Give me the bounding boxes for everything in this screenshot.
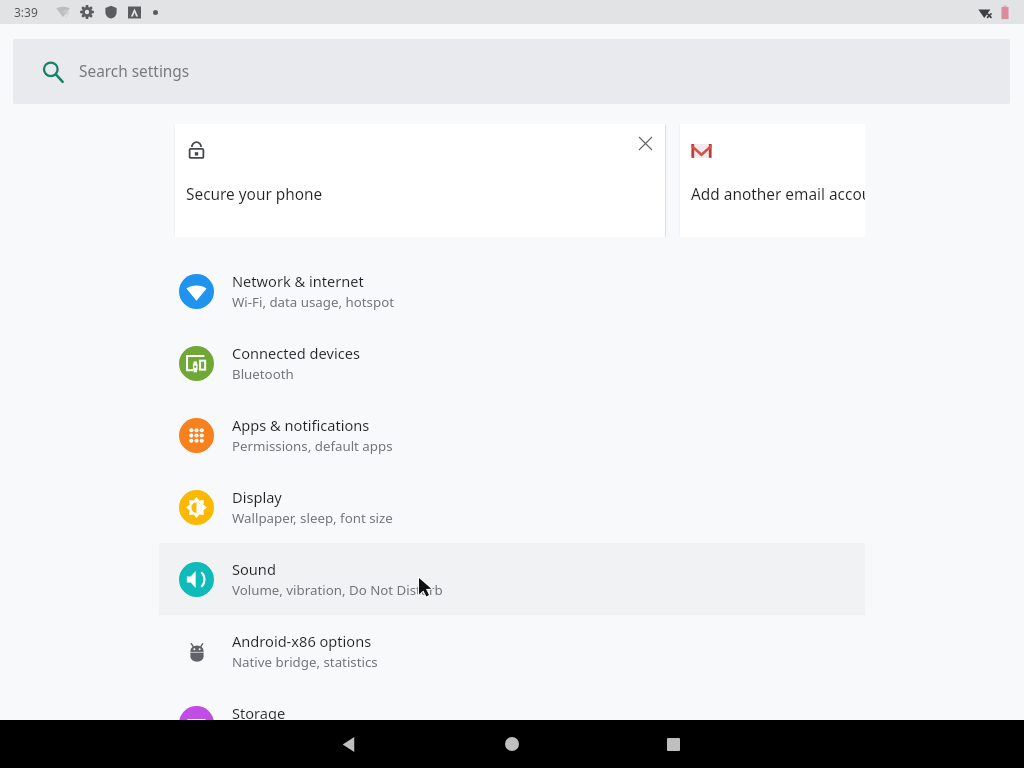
button[interactable]: Display (159, 471, 865, 543)
staticText: Storage (232, 703, 286, 723)
staticText: Native bridge, statistics (232, 653, 378, 671)
staticText: 3:39 (14, 4, 38, 20)
button[interactable]: Add another email account (680, 124, 865, 237)
staticText: Search settings (79, 61, 190, 82)
button[interactable]: Home (488, 720, 536, 768)
button[interactable]: Dismiss (631, 129, 659, 157)
staticText: Android-x86 options (232, 631, 372, 651)
button[interactable]: Android-x86 options (159, 615, 865, 687)
button[interactable]: Back (325, 720, 373, 768)
staticText: Add another email account (691, 184, 865, 205)
button[interactable]: Recents (649, 720, 697, 768)
button[interactable]: Storage (159, 687, 865, 759)
button[interactable]: Apps & notifications (159, 399, 865, 471)
button[interactable]: Connected devices (159, 327, 865, 399)
staticText: Network & internet (232, 271, 364, 291)
button[interactable]: Sound (159, 543, 865, 615)
staticText: Wi-Fi, data usage, hotspot (232, 293, 394, 311)
staticText: Display (232, 487, 282, 507)
staticText: Wallpaper, sleep, font size (232, 509, 393, 527)
staticText: Connected devices (232, 343, 360, 363)
staticText: Permissions, default apps (232, 437, 393, 455)
staticText: Sound (232, 559, 276, 579)
staticText: Free space, SD card (232, 725, 354, 743)
button[interactable]: Network & internet (159, 255, 865, 327)
staticText: Volume, vibration, Do Not Disturb (232, 581, 443, 599)
button[interactable]: Secure your phone (175, 124, 665, 237)
staticText: Bluetooth (232, 365, 294, 383)
button[interactable]: Search settings (13, 39, 1010, 104)
staticText: Secure your phone (186, 184, 323, 205)
staticText: Apps & notifications (232, 415, 370, 435)
